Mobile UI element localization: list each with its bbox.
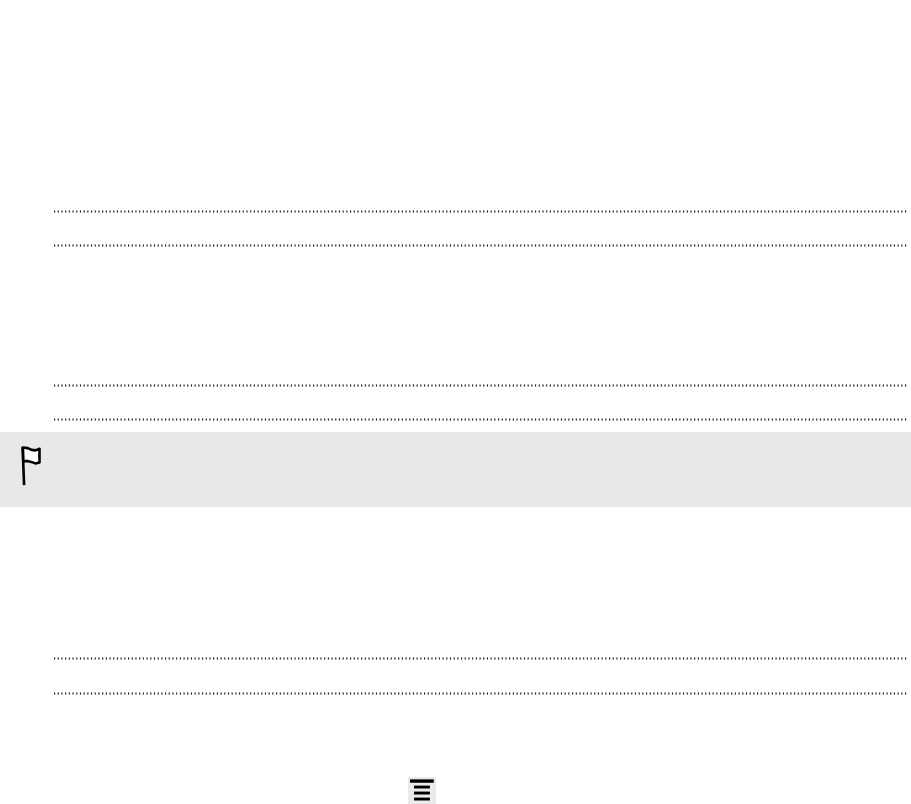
other: Flagged: [16, 448, 44, 492]
button[interactable]: [0, 246, 911, 384]
button[interactable]: Align centre: [408, 777, 436, 804]
button[interactable]: [0, 386, 911, 418]
button[interactable]: [0, 659, 911, 692]
button[interactable]: Flagged: [0, 432, 911, 507]
button[interactable]: [0, 212, 911, 244]
